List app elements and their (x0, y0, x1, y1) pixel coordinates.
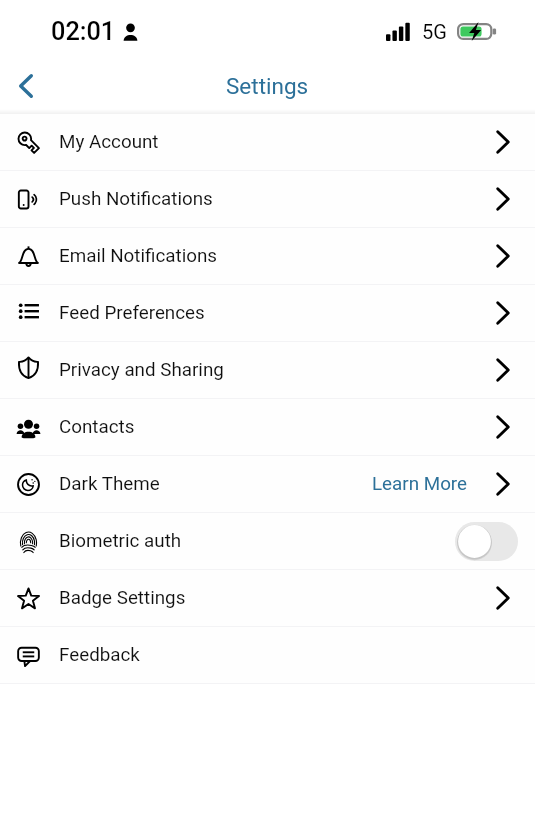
staticText: Settings (226, 73, 309, 99)
staticText: 5G (422, 20, 447, 43)
button[interactable]: Back (7, 67, 45, 105)
button[interactable]: Push Notifications (0, 171, 535, 227)
button[interactable]: My Account (0, 114, 535, 170)
button[interactable]: Feed Preferences (0, 285, 535, 341)
staticText: My Account (59, 131, 159, 153)
button[interactable]: Biometric auth (0, 513, 535, 569)
staticText: Privacy and Sharing (59, 359, 224, 381)
staticText: Contacts (59, 416, 135, 438)
staticText: Push Notifications (59, 188, 213, 210)
button[interactable]: Dark Theme (0, 456, 535, 512)
button[interactable]: Feedback (0, 627, 535, 683)
button[interactable]: Privacy and Sharing (0, 342, 535, 398)
staticText: Biometric auth (59, 530, 182, 552)
staticText: Email Notifications (59, 245, 218, 267)
staticText: Feedback (59, 644, 140, 666)
button[interactable]: Email Notifications (0, 228, 535, 284)
staticText: Learn More (372, 473, 468, 495)
button[interactable]: Contacts (0, 399, 535, 455)
staticText: 02:01 (51, 17, 116, 47)
button[interactable]: Biometric auth toggle (455, 522, 518, 561)
staticText: Feed Preferences (59, 302, 205, 324)
staticText: Badge Settings (59, 587, 186, 609)
staticText: Dark Theme (59, 473, 160, 495)
button[interactable]: Badge Settings (0, 570, 535, 626)
